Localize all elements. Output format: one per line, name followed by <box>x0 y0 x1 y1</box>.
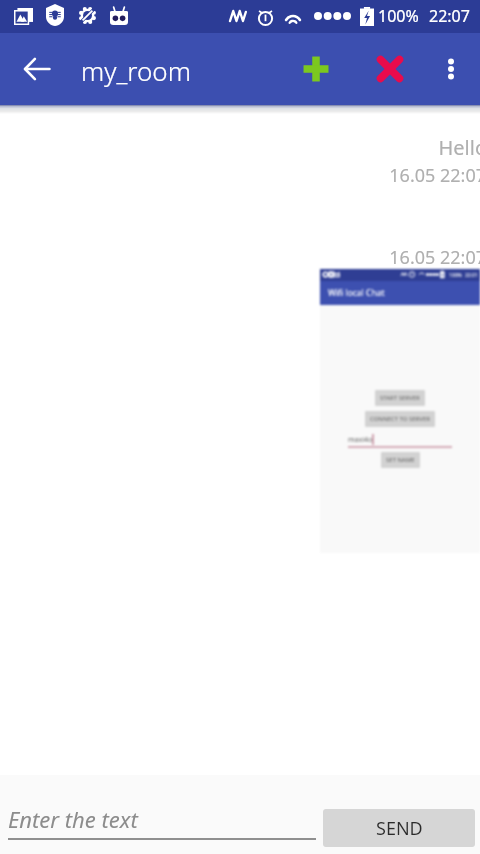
staticText: 22:01 <box>465 272 478 279</box>
staticText: Enter the text <box>8 804 138 834</box>
staticText: 22:07 <box>429 5 470 27</box>
staticText: START SERVER <box>380 394 420 402</box>
button[interactable]: Add user <box>292 45 340 93</box>
staticText: 100% <box>378 5 419 27</box>
staticText: my_room <box>81 53 191 88</box>
staticText: SET NAME <box>386 456 415 464</box>
button[interactable]: SET NAME <box>381 452 420 468</box>
staticText: CONNECT TO SERVER <box>370 415 430 423</box>
staticText: SEND <box>376 816 423 841</box>
staticText: maxi4o <box>348 435 373 445</box>
staticText: Hello <box>7 134 480 161</box>
staticText: 16.05 22:07 <box>6 245 480 270</box>
button[interactable]: CONNECT TO SERVER <box>365 411 435 427</box>
staticText: 16.05 22:07 <box>6 163 480 188</box>
button[interactable]: Enter the text <box>8 804 316 845</box>
button[interactable]: More options <box>427 45 475 93</box>
staticText: 100% <box>449 272 462 279</box>
button[interactable]: Disconnect <box>366 45 414 93</box>
button[interactable]: SEND <box>323 809 475 847</box>
button[interactable]: Navigate up <box>13 45 61 93</box>
staticText: Wifi local Chat <box>328 287 385 299</box>
button[interactable]: START SERVER <box>375 390 425 406</box>
